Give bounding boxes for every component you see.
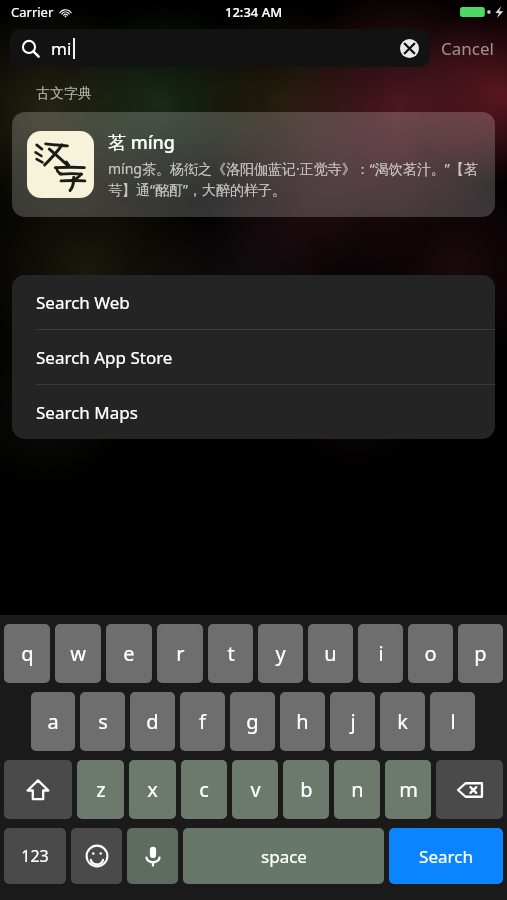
button[interactable]: k bbox=[380, 692, 425, 751]
button[interactable]: m bbox=[385, 760, 431, 819]
button[interactable]: Clear text bbox=[400, 39, 419, 58]
staticText: míng茶。杨衒之《洛阳伽蓝记·正觉寺》：“渴饮茗汁。”【茗芌】通“酩酊”，大醉… bbox=[108, 159, 480, 200]
button[interactable]: 茗 míng bbox=[12, 112, 495, 217]
staticText: Search Maps bbox=[36, 401, 138, 424]
staticText: y bbox=[275, 640, 286, 667]
staticText: x bbox=[147, 776, 158, 803]
button[interactable]: y bbox=[258, 624, 303, 683]
staticText: t bbox=[227, 640, 235, 667]
button[interactable]: o bbox=[408, 624, 453, 683]
button[interactable]: i bbox=[358, 624, 403, 683]
button[interactable]: x bbox=[129, 760, 176, 819]
button[interactable]: v bbox=[232, 760, 278, 819]
button[interactable]: q bbox=[4, 624, 50, 683]
button[interactable]: d bbox=[130, 692, 175, 751]
staticText: u bbox=[324, 640, 337, 667]
button[interactable]: space bbox=[183, 828, 384, 884]
staticText: m bbox=[399, 776, 418, 803]
staticText: g bbox=[246, 708, 259, 735]
staticText: Search bbox=[419, 845, 473, 868]
staticText: i bbox=[378, 640, 384, 667]
staticText: d bbox=[146, 708, 159, 735]
staticText: s bbox=[98, 708, 108, 735]
staticText: 茗 míng bbox=[108, 130, 176, 155]
button[interactable]: Emoji keyboard bbox=[71, 828, 122, 884]
staticText: w bbox=[70, 640, 86, 667]
staticText: Cancel bbox=[441, 37, 494, 60]
button[interactable]: Search Maps bbox=[12, 385, 495, 439]
staticText: 123 bbox=[21, 845, 49, 867]
button[interactable]: w bbox=[55, 624, 101, 683]
staticText: b bbox=[300, 776, 313, 803]
button[interactable]: p bbox=[458, 624, 503, 683]
button[interactable]: g bbox=[230, 692, 275, 751]
staticText: r bbox=[176, 640, 185, 667]
staticText: j bbox=[350, 708, 356, 735]
button[interactable]: j bbox=[330, 692, 375, 751]
button[interactable]: e bbox=[106, 624, 152, 683]
button[interactable]: t bbox=[208, 624, 253, 683]
staticText: 古文字典 bbox=[36, 85, 92, 103]
staticText: o bbox=[424, 640, 437, 667]
staticText: Carrier bbox=[11, 3, 54, 21]
button[interactable]: b bbox=[283, 760, 329, 819]
staticText: l bbox=[450, 708, 456, 735]
button[interactable]: c bbox=[181, 760, 227, 819]
button[interactable]: s bbox=[80, 692, 125, 751]
staticText: f bbox=[199, 708, 206, 735]
staticText: c bbox=[199, 776, 209, 803]
staticText: Search App Store bbox=[36, 346, 173, 369]
button[interactable]: h bbox=[280, 692, 325, 751]
button[interactable]: Dictation bbox=[127, 828, 178, 884]
button[interactable]: mi bbox=[10, 29, 430, 67]
button[interactable]: l bbox=[430, 692, 475, 751]
staticText: Search Web bbox=[36, 291, 130, 314]
staticText: v bbox=[250, 776, 261, 803]
staticText: space bbox=[261, 845, 307, 868]
button[interactable]: r bbox=[157, 624, 203, 683]
button[interactable]: u bbox=[308, 624, 353, 683]
button[interactable]: Backspace bbox=[436, 760, 503, 819]
staticText: k bbox=[397, 708, 408, 735]
button[interactable]: 123 bbox=[4, 828, 66, 884]
staticText: h bbox=[296, 708, 309, 735]
staticText: q bbox=[21, 640, 34, 667]
button[interactable]: Search bbox=[389, 828, 503, 884]
button[interactable]: Shift bbox=[4, 760, 72, 819]
button[interactable]: Search Web bbox=[12, 275, 495, 329]
staticText: mi bbox=[51, 37, 72, 60]
staticText: 12:34 AM bbox=[225, 3, 283, 21]
button[interactable]: a bbox=[31, 692, 75, 751]
staticText: e bbox=[123, 640, 135, 667]
staticText: n bbox=[351, 776, 364, 803]
button[interactable]: Cancel bbox=[430, 37, 497, 60]
button[interactable]: z bbox=[77, 760, 124, 819]
button[interactable]: Search App Store bbox=[12, 330, 495, 384]
staticText: z bbox=[96, 776, 106, 803]
button[interactable]: f bbox=[180, 692, 225, 751]
staticText: a bbox=[47, 708, 59, 735]
button[interactable]: n bbox=[334, 760, 380, 819]
staticText: p bbox=[474, 640, 487, 667]
